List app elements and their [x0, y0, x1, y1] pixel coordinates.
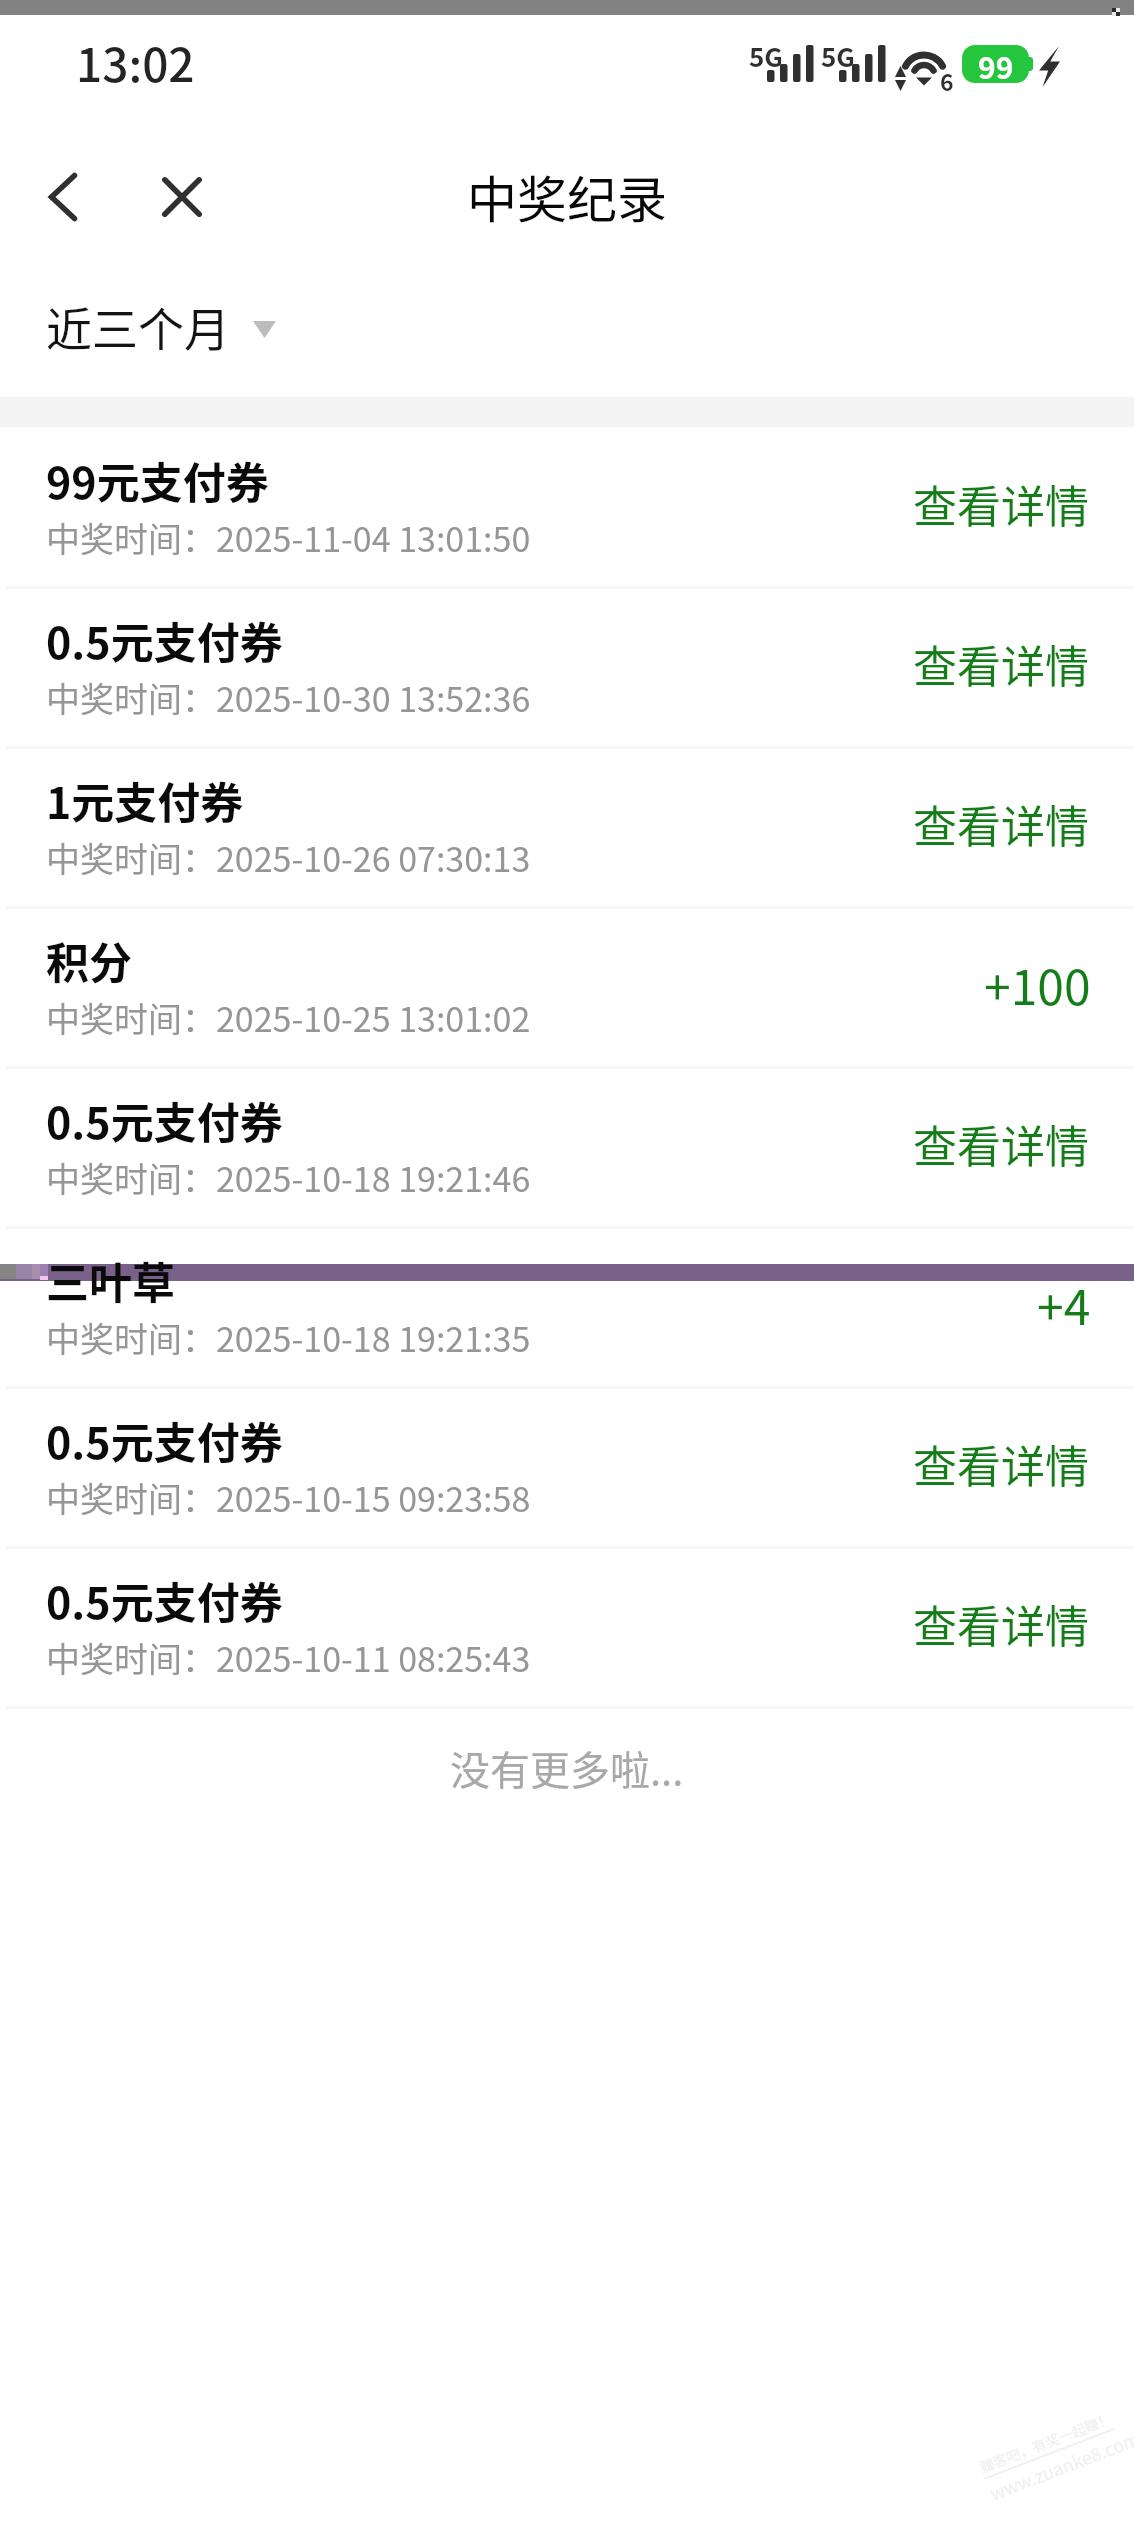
- staticText: 积分: [46, 929, 132, 991]
- staticText: 5G: [749, 37, 783, 75]
- staticText: 中奖时间：2025-10-11 08:25:43: [46, 1633, 531, 1682]
- button[interactable]: 查看详情: [911, 1590, 1091, 1658]
- button[interactable]: 0.5元支付券: [0, 1067, 1134, 1227]
- staticText: 近三个月: [46, 293, 230, 360]
- staticText: 5G: [821, 37, 855, 75]
- staticText: 三叶草: [46, 1249, 175, 1311]
- staticText: 中奖纪录: [467, 160, 667, 232]
- staticText: 13:02: [76, 29, 195, 96]
- button[interactable]: 1元支付券: [0, 747, 1134, 907]
- staticText: 查看详情: [913, 1112, 1089, 1176]
- button[interactable]: 积分: [0, 907, 1134, 1067]
- button[interactable]: 0.5元支付券: [0, 1387, 1134, 1547]
- staticText: 中奖时间：2025-10-18 19:21:46: [46, 1153, 531, 1202]
- staticText: +100: [984, 949, 1091, 1019]
- staticText: 99: [978, 45, 1014, 82]
- staticText: 没有更多啦...: [450, 1739, 684, 1797]
- staticText: 赚客吧，有奖一起赚！: [977, 2408, 1115, 2477]
- staticText: 查看详情: [913, 472, 1089, 536]
- staticText: 中奖时间：2025-10-26 07:30:13: [46, 833, 531, 882]
- button[interactable]: 查看详情: [911, 790, 1091, 858]
- staticText: 查看详情: [913, 632, 1089, 696]
- button[interactable]: 0.5元支付券: [0, 587, 1134, 747]
- staticText: 中奖时间：2025-11-04 13:01:50: [46, 513, 531, 562]
- staticText: 查看详情: [913, 1432, 1089, 1496]
- button[interactable]: 99元支付券: [0, 427, 1134, 587]
- staticText: 中奖时间：2025-10-18 19:21:35: [46, 1313, 531, 1362]
- button[interactable]: Close: [137, 152, 227, 242]
- staticText: 99元支付券: [46, 449, 269, 511]
- staticText: 1元支付券: [46, 769, 244, 831]
- staticText: 查看详情: [913, 1592, 1089, 1656]
- button[interactable]: 查看详情: [911, 1430, 1091, 1498]
- staticText: 中奖时间：2025-10-25 13:01:02: [46, 993, 531, 1042]
- button[interactable]: Back: [18, 152, 108, 242]
- staticText: 查看详情: [913, 792, 1089, 856]
- staticText: 中奖时间：2025-10-15 09:23:58: [46, 1473, 531, 1522]
- staticText: 0.5元支付券: [46, 1569, 283, 1631]
- staticText: 0.5元支付券: [46, 1409, 283, 1471]
- staticText: +4: [1037, 1269, 1091, 1339]
- staticText: 6: [940, 64, 954, 97]
- button[interactable]: 三叶草: [0, 1227, 1134, 1387]
- button[interactable]: 查看详情: [911, 630, 1091, 698]
- button[interactable]: 查看详情: [911, 1110, 1091, 1178]
- staticText: 中奖时间：2025-10-30 13:52:36: [46, 673, 531, 722]
- button[interactable]: 0.5元支付券: [0, 1547, 1134, 1707]
- staticText: www.zuanke8.com: [986, 2424, 1134, 2506]
- staticText: 0.5元支付券: [46, 1089, 283, 1151]
- staticText: 0.5元支付券: [46, 609, 283, 671]
- button[interactable]: 近三个月: [0, 276, 1134, 376]
- button[interactable]: 查看详情: [911, 470, 1091, 538]
